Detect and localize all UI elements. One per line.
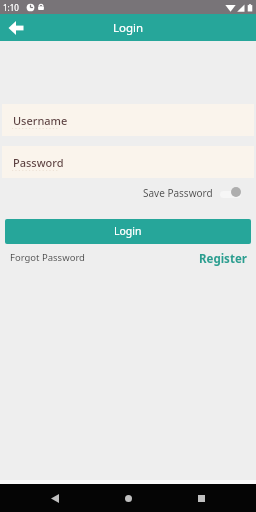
staticText: Login — [113, 20, 144, 36]
button[interactable]: Save Password — [143, 186, 256, 200]
button[interactable]: Forgot Password — [0, 251, 85, 264]
button[interactable]: Password — [2, 146, 254, 178]
button[interactable]: Username — [2, 104, 254, 136]
button[interactable]: Home — [110, 484, 146, 512]
button[interactable]: Recents — [183, 484, 219, 512]
button[interactable]: Back — [37, 484, 73, 512]
button[interactable]: Back — [0, 14, 27, 41]
staticText: Login — [114, 224, 142, 238]
staticText: 1:10 — [3, 2, 19, 13]
button[interactable]: Register — [199, 249, 256, 265]
staticText: Username — [13, 113, 68, 128]
button[interactable]: Login — [5, 219, 251, 244]
staticText: Password — [13, 155, 64, 170]
staticText: Save Password — [143, 186, 213, 200]
